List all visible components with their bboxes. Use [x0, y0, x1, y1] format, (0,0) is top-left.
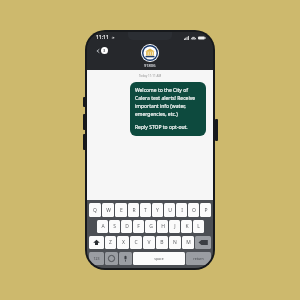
button[interactable]: L — [193, 220, 204, 233]
button[interactable]: Y — [152, 203, 163, 217]
button[interactable]: Dictate — [119, 252, 132, 265]
staticText: O — [192, 207, 196, 214]
staticText: 123 — [93, 256, 100, 261]
button[interactable]: Delete — [195, 236, 211, 249]
button[interactable]: City of Calera contact — [141, 44, 159, 62]
button[interactable]: J — [169, 220, 180, 233]
button[interactable]: O — [188, 203, 199, 217]
staticText: T — [144, 207, 147, 214]
staticText: H — [161, 223, 165, 230]
button[interactable]: A — [97, 220, 108, 233]
button[interactable]: T — [140, 203, 151, 217]
button[interactable]: Shift — [89, 236, 104, 249]
staticText: Y — [156, 207, 159, 214]
staticText: L — [197, 223, 200, 230]
staticText: 11:11 — [96, 34, 109, 41]
button[interactable]: H — [157, 220, 168, 233]
button[interactable]: Welcome to the City of Calera text alert… — [130, 82, 206, 136]
button[interactable]: W — [102, 203, 114, 217]
button[interactable]: space — [133, 252, 185, 265]
button[interactable]: N — [169, 236, 181, 249]
button[interactable]: U — [164, 203, 175, 217]
button[interactable]: F — [133, 220, 144, 233]
button[interactable]: Z — [105, 236, 116, 249]
button[interactable]: X — [117, 236, 129, 249]
button[interactable]: 123 — [89, 252, 104, 265]
staticText: Today 11:11 AM — [87, 74, 213, 78]
staticText: F — [137, 223, 140, 230]
button[interactable]: K — [181, 220, 192, 233]
staticText: J — [174, 223, 176, 230]
staticText: space — [154, 256, 164, 261]
button[interactable]: Emoji — [105, 252, 118, 265]
button[interactable]: return — [186, 252, 211, 265]
staticText: E — [120, 207, 123, 214]
button[interactable]: D — [121, 220, 132, 233]
button[interactable]: I — [176, 203, 187, 217]
staticText: Z — [109, 239, 112, 246]
staticText: P — [204, 207, 208, 214]
button[interactable]: P — [200, 203, 211, 217]
staticText: A — [101, 223, 105, 230]
button[interactable]: E — [115, 203, 127, 217]
staticText: C — [134, 239, 138, 246]
button[interactable]: R — [128, 203, 139, 217]
button[interactable]: S — [109, 220, 120, 233]
staticText: G — [149, 223, 153, 230]
button[interactable]: Back, 3 unread — [94, 45, 110, 56]
staticText: S — [113, 223, 116, 230]
staticText: I — [181, 207, 183, 214]
staticText: M — [186, 239, 191, 246]
button[interactable]: M — [182, 236, 194, 249]
staticText: K — [185, 223, 189, 230]
staticText: N — [173, 239, 177, 246]
button[interactable]: V — [143, 236, 155, 249]
staticText: V — [147, 239, 151, 246]
staticText: Welcome to the City of Calera text alert… — [135, 87, 201, 118]
staticText: U — [168, 207, 172, 214]
staticText: W — [106, 207, 111, 214]
button[interactable]: Q — [89, 203, 101, 217]
button[interactable]: G — [145, 220, 156, 233]
staticText: D — [125, 223, 129, 230]
staticText: Q — [93, 207, 97, 214]
button[interactable]: B — [156, 236, 168, 249]
staticText: Reply STOP to opt-out. — [135, 124, 188, 131]
staticText: X — [122, 239, 125, 246]
staticText: B — [160, 239, 164, 246]
staticText: return — [193, 256, 204, 261]
staticText: 3 — [103, 48, 106, 53]
staticText: R — [132, 207, 136, 214]
staticText: 91806 — [144, 63, 156, 68]
button[interactable]: C — [130, 236, 142, 249]
